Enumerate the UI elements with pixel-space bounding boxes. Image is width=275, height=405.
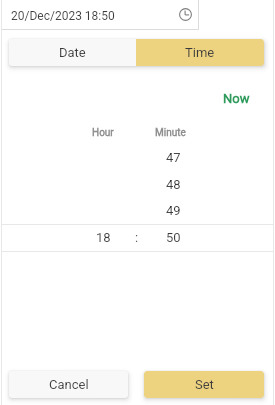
- staticText: 47: [166, 150, 181, 165]
- staticText: 18: [96, 230, 111, 245]
- staticText: 48: [166, 177, 181, 192]
- staticText: 50: [166, 230, 181, 245]
- staticText: Cancel: [49, 377, 89, 392]
- button[interactable]: Set: [144, 371, 264, 398]
- staticText: Hour: [92, 127, 114, 139]
- staticText: Set: [195, 377, 214, 392]
- staticText: Date: [59, 45, 86, 60]
- staticText: Minute: [155, 127, 186, 139]
- button[interactable]: Now: [213, 87, 260, 110]
- button[interactable]: Cancel: [9, 371, 128, 398]
- button[interactable]: Date: [9, 39, 136, 66]
- staticText: :: [135, 230, 139, 245]
- button[interactable]: Time: [136, 39, 264, 66]
- button[interactable]: Open time picker: [173, 2, 197, 26]
- staticText: Time: [185, 45, 215, 60]
- staticText: 20/Dec/2023 18:50: [11, 9, 115, 23]
- staticText: Now: [223, 91, 250, 106]
- staticText: 49: [166, 203, 181, 218]
